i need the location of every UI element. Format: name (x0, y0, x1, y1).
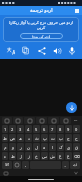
button[interactable]: Enter (70, 161, 80, 169)
staticText: 3 (19, 127, 22, 132)
button[interactable]: ء (2, 152, 8, 160)
staticText: م (4, 145, 7, 150)
button[interactable]: خ (33, 152, 40, 160)
button[interactable]: ا (49, 143, 56, 151)
button[interactable]: ظ (9, 152, 16, 160)
staticText: خ (35, 154, 38, 159)
button[interactable]: Voice input (66, 45, 77, 56)
staticText: پ (43, 136, 47, 141)
staticText: 5 (35, 127, 38, 132)
button[interactable]: د (25, 134, 32, 142)
staticText: ب (59, 136, 63, 141)
button[interactable]: ٹ (33, 134, 40, 142)
button[interactable]: ع (65, 152, 72, 160)
button[interactable]: 0 (73, 125, 80, 133)
staticText: 7 (51, 127, 54, 132)
button[interactable]: Hide keyboard (73, 171, 79, 175)
button[interactable]: ل (33, 143, 40, 151)
staticText: ژ (20, 154, 22, 159)
staticText: ص (10, 136, 15, 141)
button[interactable]: م (2, 143, 8, 151)
button[interactable]: ر (17, 143, 24, 151)
button[interactable]: Keyboard tool 4 (36, 117, 47, 124)
button[interactable]: 4 (25, 125, 32, 133)
staticText: ٹ (35, 136, 39, 141)
button[interactable]: ن (25, 143, 32, 151)
button[interactable]: Keyboard tool 6 (60, 117, 71, 124)
button[interactable]: 6 (41, 125, 48, 133)
button[interactable]: Translate (5, 45, 16, 56)
staticText: ز (28, 154, 30, 159)
button[interactable]: Period (62, 161, 69, 169)
button[interactable]: Keyboard tool 1 (2, 117, 12, 124)
button[interactable]: Comma (22, 161, 29, 169)
staticText: اردو میں حروف درج کریں یا آواز ریکارڈ کر… (6, 20, 76, 30)
button[interactable]: ج (65, 134, 72, 142)
button[interactable]: ص (9, 134, 16, 142)
staticText: و (12, 145, 14, 150)
button[interactable]: ز (25, 152, 32, 160)
staticText: ⌫ (74, 154, 80, 159)
staticText: ظ (11, 154, 15, 159)
button[interactable]: 3 (17, 125, 24, 133)
button[interactable]: س (41, 152, 48, 160)
button[interactable]: Emoji (13, 161, 21, 169)
staticText: د (28, 136, 30, 141)
staticText: س (42, 154, 47, 159)
button[interactable]: Keyboard tool 5 (48, 117, 59, 124)
staticText: ۔ (64, 163, 67, 168)
staticText: ، (25, 163, 27, 168)
button[interactable]: 8 (57, 125, 64, 133)
staticText: ھ (19, 136, 22, 141)
button[interactable]: 1 (2, 125, 8, 133)
button[interactable]: ک (57, 143, 64, 151)
button[interactable]: Download (66, 102, 77, 113)
button[interactable]: ط (2, 134, 8, 142)
staticText: 1 (4, 127, 7, 132)
button[interactable]: ی (65, 143, 72, 151)
button[interactable]: ت (49, 134, 56, 142)
button[interactable]: و (9, 143, 16, 151)
button[interactable]: اردو کی بورڈ (20, 33, 63, 39)
staticText: 2 (11, 127, 14, 132)
button[interactable]: Speak (51, 45, 62, 56)
button[interactable]: ق (73, 143, 80, 151)
staticText: 9 (67, 127, 70, 132)
button[interactable]: Keyboard tool 3 (24, 117, 35, 124)
button[interactable]: Keyboard tool 2 (13, 117, 23, 124)
staticText: ک (59, 145, 63, 150)
button[interactable]: More (72, 117, 80, 124)
staticText: ا (52, 145, 54, 150)
button[interactable]: پ (41, 134, 48, 142)
staticText: ج (67, 136, 70, 141)
button[interactable]: اردو میں حروف درج کریں یا آواز ریکارڈ کر… (3, 17, 79, 42)
button[interactable]: Switch keyboard (3, 171, 9, 175)
staticText: ش (50, 154, 55, 159)
button[interactable]: ش (49, 152, 56, 160)
button[interactable]: Copy (20, 45, 31, 56)
button[interactable]: Symbols (2, 161, 12, 169)
staticText: ی (67, 145, 71, 150)
button[interactable]: ژ (17, 152, 24, 160)
button[interactable]: 2 (9, 125, 16, 133)
button[interactable]: غ (57, 152, 64, 160)
button[interactable]: Share (36, 45, 47, 56)
button[interactable]: Menu (74, 8, 80, 14)
staticText: 8 (59, 127, 62, 132)
staticText: ع (67, 154, 70, 159)
button[interactable]: 9 (65, 125, 72, 133)
button[interactable]: ح (73, 134, 80, 142)
staticText: ••• (74, 119, 78, 123)
staticText: ح (75, 136, 78, 141)
staticText: ن (27, 145, 30, 150)
button[interactable]: ھ (17, 134, 24, 142)
button[interactable]: ب (57, 134, 64, 142)
staticText: اردو ترجمہ (30, 7, 53, 15)
staticText: ت (51, 136, 55, 141)
button[interactable]: 5 (33, 125, 40, 133)
button[interactable]: ہ (41, 143, 48, 151)
button[interactable]: ⌫ (73, 152, 80, 160)
button[interactable]: 7 (49, 125, 56, 133)
staticText: 4 (27, 127, 30, 132)
